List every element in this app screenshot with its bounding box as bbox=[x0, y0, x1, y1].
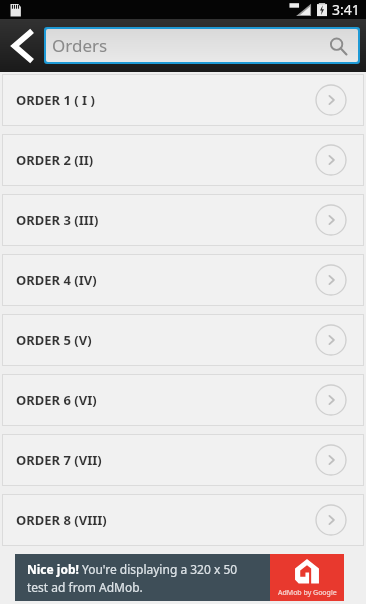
button[interactable]: ORDER 5 (V) bbox=[2, 314, 364, 366]
button[interactable]: ORDER 3 (III) bbox=[2, 194, 364, 246]
staticText: test ad from AdMob. bbox=[27, 579, 143, 595]
staticText: ORDER 3 (III) bbox=[16, 211, 99, 229]
staticText: ORDER 8 (VIII) bbox=[16, 511, 107, 529]
staticText: ORDER 1 ( I ) bbox=[16, 91, 95, 109]
button[interactable]: Orders bbox=[46, 29, 358, 62]
staticText: You're displaying a 320 x 50 bbox=[82, 561, 238, 577]
staticText: ORDER 2 (II) bbox=[16, 151, 94, 169]
button[interactable]: Search bbox=[326, 34, 350, 58]
button[interactable]: ORDER 1 ( I ) bbox=[2, 74, 364, 126]
staticText: ORDER 4 (IV) bbox=[16, 271, 97, 289]
staticText: Nice job! bbox=[27, 561, 79, 577]
staticText: ORDER 5 (V) bbox=[16, 331, 92, 349]
button[interactable]: ORDER 7 (VII) bbox=[2, 434, 364, 486]
staticText: ORDER 7 (VII) bbox=[16, 451, 102, 469]
button[interactable]: ORDER 4 (IV) bbox=[2, 254, 364, 306]
button[interactable]: ORDER 6 (VI) bbox=[2, 374, 364, 426]
button[interactable]: Nice job! bbox=[15, 554, 344, 601]
staticText: 3:41 bbox=[332, 0, 360, 19]
button[interactable]: ORDER 2 (II) bbox=[2, 134, 364, 186]
button[interactable]: ORDER 8 (VIII) bbox=[2, 494, 364, 546]
staticText: ORDER 6 (VI) bbox=[16, 391, 97, 409]
staticText: AdMob by Google bbox=[278, 588, 337, 598]
staticText: Orders bbox=[52, 34, 108, 57]
button[interactable]: Back bbox=[0, 19, 44, 72]
